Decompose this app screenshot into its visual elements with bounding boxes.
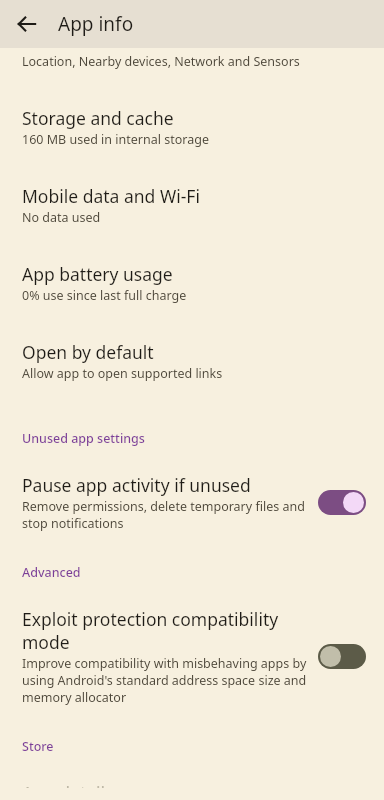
staticText: Mobile data and Wi-Fi bbox=[22, 184, 200, 208]
staticText: Improve compatibility with misbehaving a… bbox=[22, 655, 308, 706]
button[interactable]: App battery usage bbox=[0, 226, 384, 304]
button[interactable]: Exploit protection compatibility mode bbox=[0, 581, 384, 706]
staticText: Storage and cache bbox=[22, 106, 174, 130]
staticText: Location, Nearby devices, Network and Se… bbox=[22, 53, 300, 70]
staticText: Pause app activity if unused bbox=[22, 473, 251, 497]
staticText: App info bbox=[58, 11, 134, 37]
button[interactable]: Back bbox=[6, 3, 48, 45]
staticText: Allow app to open supported links bbox=[22, 365, 223, 382]
staticText: Store bbox=[22, 738, 54, 755]
button[interactable]: Location, Nearby devices, Network and Se… bbox=[0, 48, 384, 70]
staticText: App details bbox=[22, 781, 114, 788]
staticText: App battery usage bbox=[22, 262, 173, 286]
staticText: Exploit protection compatibility mode bbox=[22, 607, 308, 654]
staticText: Remove permissions, delete temporary fil… bbox=[22, 498, 308, 532]
staticText: 0% use since last full charge bbox=[22, 287, 187, 304]
button[interactable]: Mobile data and Wi-Fi bbox=[0, 148, 384, 226]
staticText: Unused app settings bbox=[22, 430, 145, 447]
staticText: Open by default bbox=[22, 340, 154, 364]
button[interactable]: Pause app activity if unused bbox=[0, 447, 384, 532]
staticText: No data used bbox=[22, 209, 101, 226]
button[interactable]: Open by default bbox=[0, 304, 384, 382]
button[interactable]: Storage and cache bbox=[0, 70, 384, 148]
staticText: Advanced bbox=[22, 564, 81, 581]
staticText: 160 MB used in internal storage bbox=[22, 131, 209, 148]
